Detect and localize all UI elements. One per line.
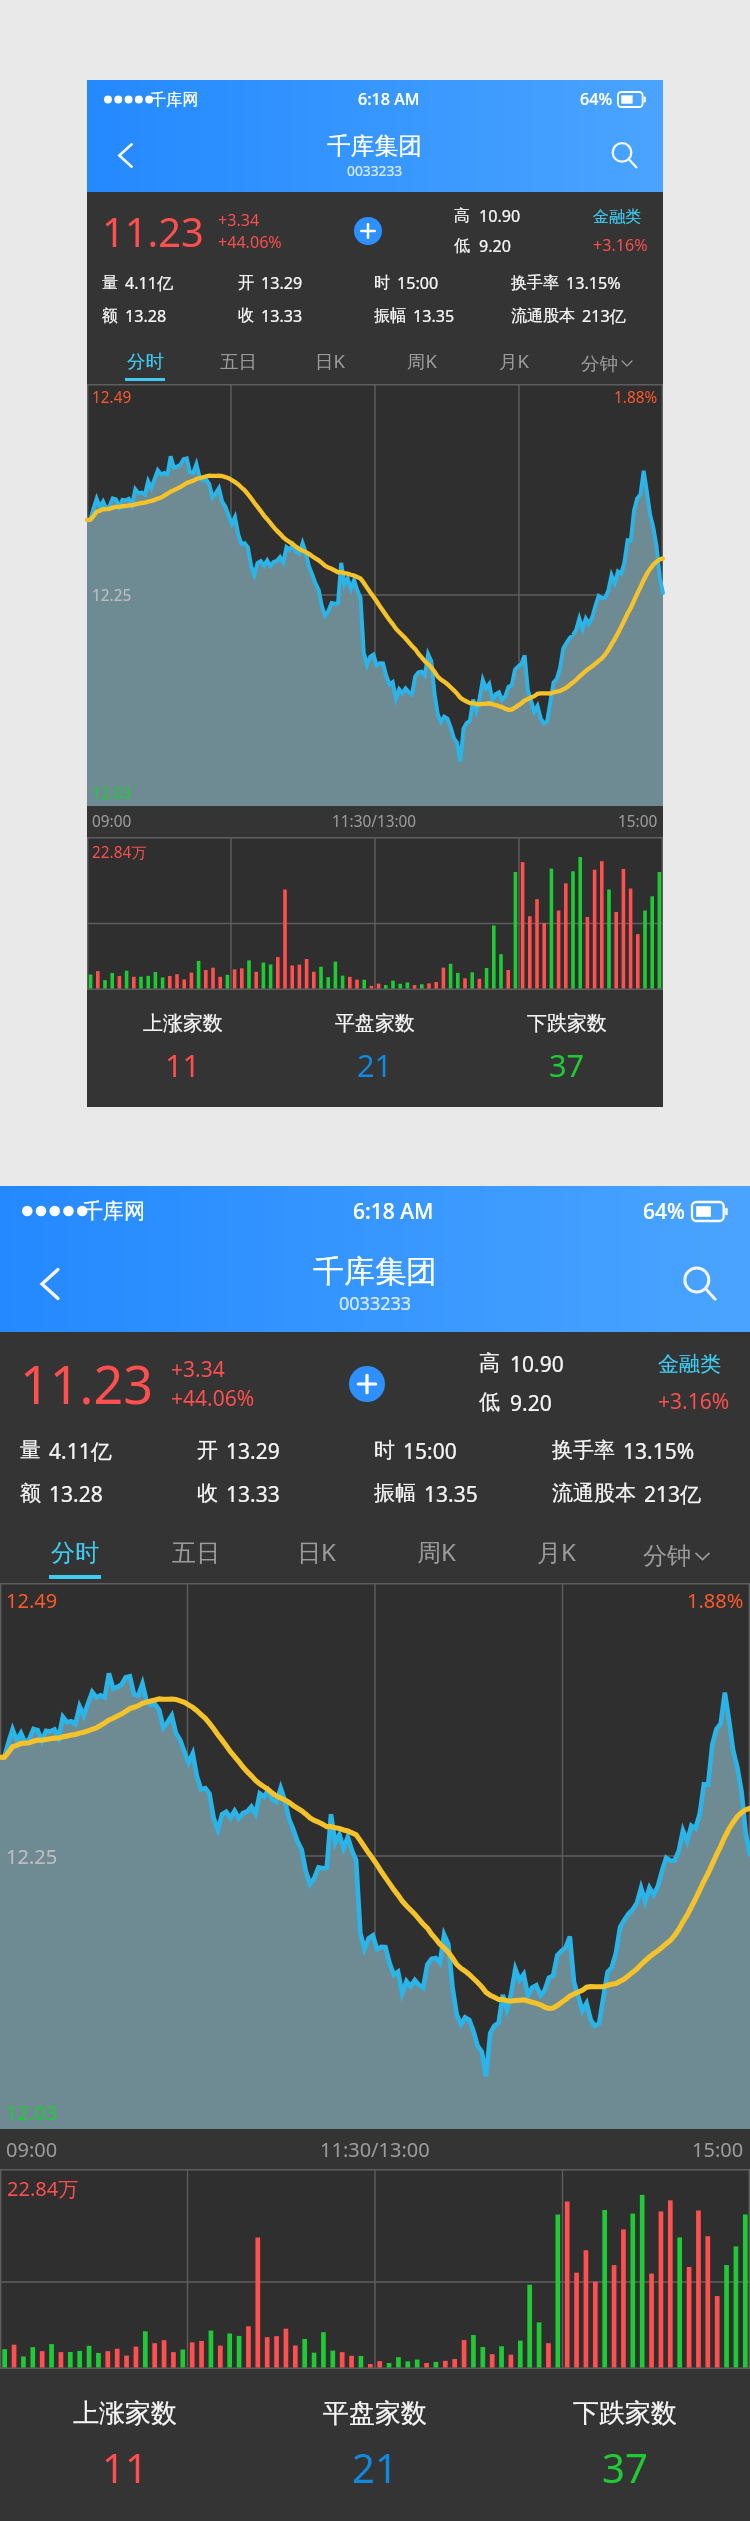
staticText: 时 <box>374 1437 395 1463</box>
staticText: 金融类 <box>593 206 642 226</box>
staticText: 换手率 <box>511 272 560 292</box>
staticText: 21 <box>352 2440 398 2494</box>
staticText: 低 <box>454 235 471 255</box>
staticText: 分钟 <box>581 352 618 375</box>
staticText: 13.33 <box>226 1480 280 1509</box>
button[interactable]: 周K <box>376 338 468 384</box>
staticText: 37 <box>602 2440 648 2494</box>
staticText: 12.25 <box>6 1843 58 1870</box>
button[interactable]: 分钟 <box>616 1523 736 1583</box>
staticText: 13.15% <box>566 272 621 294</box>
staticText: 09:00 <box>6 2136 58 2163</box>
staticText: +3.16% <box>658 1387 730 1416</box>
staticText: 0033233 <box>339 1291 412 1316</box>
staticText: 流通股本 <box>552 1480 636 1506</box>
staticText: 9.20 <box>510 1389 552 1418</box>
staticText: 4.11亿 <box>125 272 174 294</box>
button[interactable]: 上涨家数 <box>87 990 279 1107</box>
staticText: 213亿 <box>644 1480 702 1509</box>
staticText: 12.25 <box>92 585 132 606</box>
staticText: +44.06% <box>218 231 282 253</box>
staticText: 周K <box>417 1535 456 1568</box>
staticText: 五日 <box>220 350 257 373</box>
staticText: 37 <box>549 1044 585 1086</box>
button[interactable]: 月K <box>468 338 560 384</box>
button[interactable]: 上涨家数 <box>0 2369 250 2521</box>
staticText: +3.34 <box>218 209 260 231</box>
staticText: 22.84万 <box>7 2175 79 2202</box>
button[interactable]: Search <box>668 1252 732 1316</box>
button[interactable]: 分时 <box>14 1523 135 1583</box>
staticText: 千库网 <box>150 89 199 109</box>
staticText: 15:00 <box>403 1437 457 1466</box>
button[interactable]: 周K <box>376 1523 496 1583</box>
staticText: 开 <box>238 272 255 292</box>
staticText: 64% <box>580 88 613 110</box>
button[interactable]: Add to watchlist <box>349 1366 385 1402</box>
staticText: 分时 <box>51 1538 99 1568</box>
staticText: 13.33 <box>261 305 303 327</box>
button[interactable]: 日K <box>256 1523 376 1583</box>
staticText: 9.20 <box>479 235 511 257</box>
staticText: 11:30/13:00 <box>332 811 417 832</box>
staticText: 额 <box>20 1480 41 1506</box>
staticText: 分时 <box>127 350 164 373</box>
button[interactable]: 分钟 <box>560 338 652 384</box>
staticText: 高 <box>479 1350 500 1376</box>
staticText: 额 <box>102 305 119 325</box>
staticText: +3.16% <box>593 234 648 256</box>
staticText: 开 <box>197 1437 218 1463</box>
staticText: 0033233 <box>347 161 403 180</box>
staticText: 平盘家数 <box>335 1011 415 1036</box>
staticText: 流通股本 <box>511 305 576 325</box>
staticText: 12.49 <box>92 387 132 408</box>
staticText: 13.35 <box>413 305 455 327</box>
staticText: 千库集团 <box>313 1252 437 1291</box>
staticText: 6:18 AM <box>353 1197 434 1226</box>
staticText: 平盘家数 <box>323 2397 427 2430</box>
staticText: 换手率 <box>552 1437 615 1463</box>
staticText: 11:30/13:00 <box>320 2136 430 2163</box>
staticText: 12.03 <box>92 783 132 804</box>
button[interactable]: Back <box>18 1252 82 1316</box>
staticText: 收 <box>197 1480 218 1506</box>
staticText: 213亿 <box>582 305 626 327</box>
button[interactable]: 分时 <box>98 338 191 384</box>
staticText: 金融类 <box>658 1351 721 1377</box>
button[interactable]: Back <box>101 131 150 180</box>
staticText: 11.23 <box>102 204 204 258</box>
button[interactable]: Search <box>600 131 649 180</box>
staticText: 1.88% <box>687 1587 744 1614</box>
button[interactable]: 月K <box>496 1523 616 1583</box>
staticText: 12.49 <box>6 1587 58 1614</box>
staticText: 日K <box>297 1535 336 1568</box>
button[interactable]: Add to watchlist <box>354 217 382 245</box>
staticText: 13.29 <box>226 1437 280 1466</box>
staticText: 13.28 <box>125 305 167 327</box>
staticText: 分钟 <box>643 1541 691 1571</box>
staticText: 13.28 <box>49 1480 103 1509</box>
staticText: 15:00 <box>618 811 658 832</box>
staticText: 量 <box>102 272 119 292</box>
staticText: 月K <box>499 348 529 373</box>
button[interactable]: 下跌家数 <box>471 990 663 1107</box>
staticText: 时 <box>374 272 391 292</box>
button[interactable]: 日K <box>284 338 376 384</box>
staticText: 五日 <box>172 1538 220 1568</box>
staticText: 上涨家数 <box>143 1011 223 1036</box>
staticText: 高 <box>454 205 471 225</box>
button[interactable]: 平盘家数 <box>279 990 471 1107</box>
staticText: 64% <box>643 1197 685 1226</box>
button[interactable]: 五日 <box>135 1523 256 1583</box>
button[interactable]: 平盘家数 <box>250 2369 500 2521</box>
staticText: 10.90 <box>479 205 521 227</box>
staticText: 上涨家数 <box>73 2397 177 2430</box>
staticText: 13.35 <box>424 1480 478 1509</box>
staticText: +44.06% <box>171 1384 255 1413</box>
staticText: 09:00 <box>92 811 132 832</box>
staticText: 振幅 <box>374 1480 416 1506</box>
button[interactable]: 五日 <box>191 338 284 384</box>
staticText: 22.84万 <box>92 842 147 863</box>
button[interactable]: 下跌家数 <box>500 2369 750 2521</box>
staticText: 4.11亿 <box>49 1437 112 1466</box>
